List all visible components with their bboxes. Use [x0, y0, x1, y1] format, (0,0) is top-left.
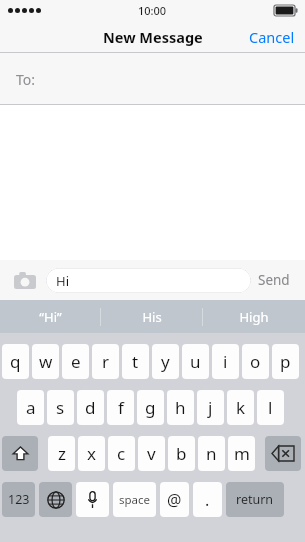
button[interactable]: g — [137, 390, 164, 425]
button[interactable]: @ — [160, 482, 189, 517]
button[interactable]: space — [113, 482, 156, 517]
button[interactable]: q — [2, 344, 29, 379]
staticText: Hi — [56, 272, 69, 290]
staticText: His — [142, 308, 162, 326]
button[interactable]: y — [152, 344, 179, 379]
staticText: To: — [16, 70, 36, 89]
button[interactable]: f — [107, 390, 134, 425]
button[interactable]: l — [257, 390, 284, 425]
button[interactable]: Switch keyboard — [39, 482, 72, 517]
staticText: l — [268, 396, 273, 419]
staticText: x — [87, 442, 96, 465]
staticText: return — [236, 491, 274, 508]
button[interactable]: High — [203, 300, 305, 333]
button[interactable]: j — [197, 390, 224, 425]
button[interactable]: r — [92, 344, 119, 379]
staticText: g — [145, 396, 156, 419]
button[interactable]: x — [78, 436, 105, 471]
staticText: m — [234, 442, 250, 465]
staticText: b — [176, 442, 187, 465]
staticText: w — [39, 350, 53, 373]
button[interactable]: return — [226, 482, 284, 517]
button[interactable]: b — [168, 436, 195, 471]
button[interactable]: . — [193, 482, 222, 517]
staticText: t — [132, 350, 139, 373]
staticText: @ — [167, 489, 182, 511]
staticText: h — [175, 396, 186, 419]
staticText: 10:00 — [138, 3, 167, 18]
button[interactable]: Cancel — [239, 21, 305, 53]
button[interactable]: m — [228, 436, 255, 471]
staticText: i — [223, 350, 228, 373]
staticText: Cancel — [249, 27, 295, 47]
staticText: r — [102, 350, 110, 373]
staticText: q — [10, 350, 21, 373]
button[interactable]: t — [122, 344, 149, 379]
staticText: u — [190, 350, 201, 373]
staticText: High — [239, 308, 269, 326]
button[interactable]: 123 — [2, 482, 35, 517]
staticText: z — [58, 442, 66, 465]
staticText: k — [236, 396, 246, 419]
staticText: c — [117, 442, 126, 465]
button[interactable]: Send — [251, 265, 297, 295]
staticText: . — [205, 489, 210, 511]
button[interactable]: o — [242, 344, 269, 379]
staticText: “Hi” — [39, 308, 62, 326]
staticText: d — [85, 396, 96, 419]
button[interactable]: To: — [0, 53, 305, 105]
button[interactable]: k — [227, 390, 254, 425]
button[interactable]: n — [198, 436, 225, 471]
staticText: f — [118, 396, 124, 419]
button[interactable]: Take photo — [8, 263, 42, 297]
button[interactable]: a — [17, 390, 44, 425]
staticText: s — [56, 396, 65, 419]
staticText: p — [280, 350, 291, 373]
button[interactable]: u — [182, 344, 209, 379]
button[interactable]: d — [77, 390, 104, 425]
staticText: space — [119, 492, 151, 508]
staticText: a — [26, 396, 36, 419]
button[interactable]: “Hi” — [0, 300, 101, 333]
button[interactable]: Hi — [46, 268, 251, 293]
button[interactable]: i — [212, 344, 239, 379]
staticText: 123 — [8, 491, 30, 508]
button[interactable]: h — [167, 390, 194, 425]
button[interactable]: p — [272, 344, 299, 379]
staticText: e — [71, 350, 81, 373]
button[interactable]: Dictate — [76, 482, 109, 517]
staticText: Send — [258, 271, 290, 289]
staticText: v — [147, 442, 156, 465]
staticText: j — [208, 396, 213, 419]
button[interactable]: s — [47, 390, 74, 425]
button[interactable]: His — [101, 300, 203, 333]
button[interactable]: c — [108, 436, 135, 471]
button[interactable]: Shift — [2, 436, 38, 471]
button[interactable]: w — [32, 344, 59, 379]
button[interactable]: v — [138, 436, 165, 471]
staticText: n — [206, 442, 217, 465]
button[interactable]: z — [48, 436, 75, 471]
staticText: o — [250, 350, 261, 373]
staticText: y — [161, 350, 170, 373]
staticText: New Message — [103, 27, 203, 47]
button[interactable]: e — [62, 344, 89, 379]
button[interactable]: Delete — [265, 436, 301, 471]
